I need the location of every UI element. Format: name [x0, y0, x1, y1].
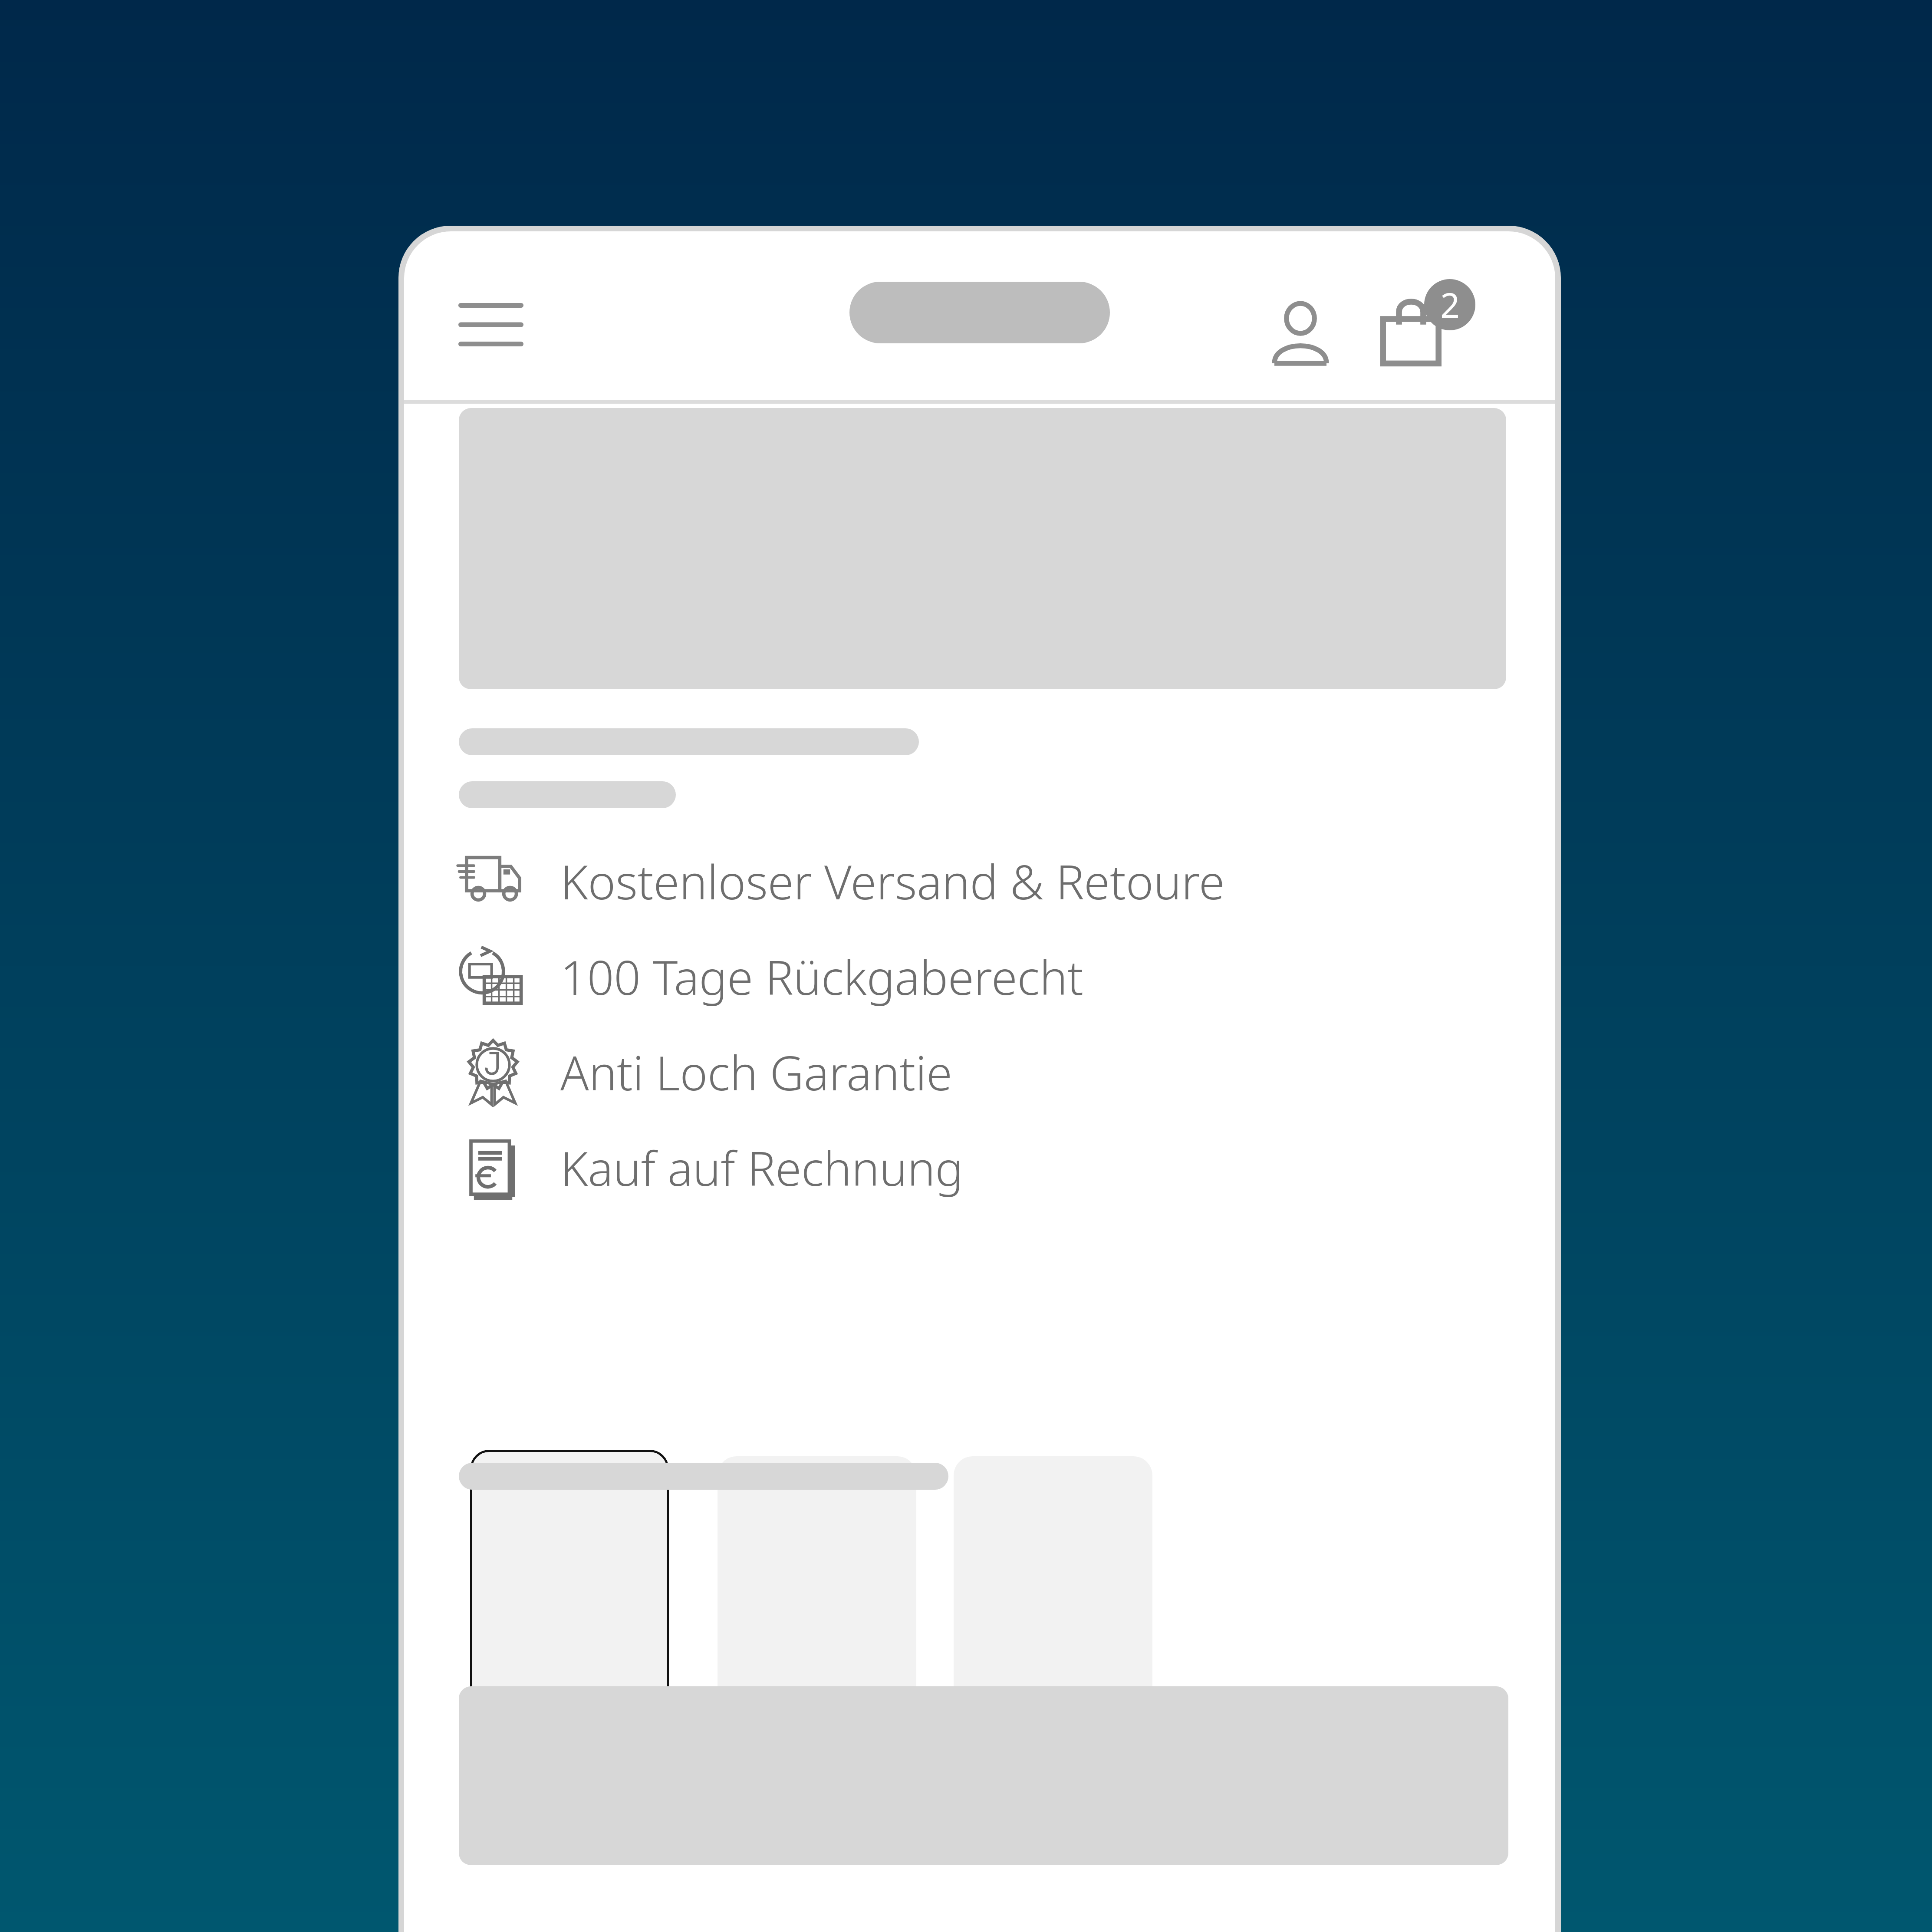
- staticText: Anti Loch Garantie: [560, 1040, 952, 1104]
- button[interactable]: Kauf auf Rechnung: [456, 1124, 1324, 1211]
- staticText: Kostenloser Versand & Retoure: [560, 849, 1225, 913]
- button[interactable]: Account: [1255, 288, 1346, 379]
- button[interactable]: Kostenloser Versand & Retoure: [456, 838, 1324, 925]
- button[interactable]: Variant 1: [470, 1450, 669, 1777]
- button[interactable]: Variant 2: [718, 1456, 916, 1773]
- staticText: 2: [1440, 282, 1460, 328]
- button[interactable]: Variant 3: [954, 1456, 1152, 1773]
- button[interactable]: Anti Loch Garantie: [456, 1029, 1324, 1116]
- button[interactable]: 100 Tage Rückgaberecht: [456, 933, 1324, 1020]
- button[interactable]: Search: [849, 282, 1110, 343]
- staticText: 100 Tage Rückgaberecht: [560, 945, 1083, 1009]
- staticText: Kauf auf Rechnung: [560, 1136, 964, 1200]
- button[interactable]: Menu: [452, 299, 530, 351]
- button[interactable]: Cart, 2 items: [1372, 279, 1485, 392]
